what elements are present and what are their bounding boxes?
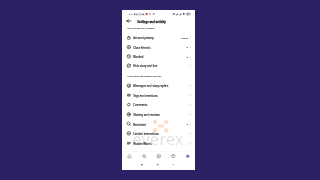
button[interactable]: Blocked [122, 52, 195, 61]
staticText: Sharing and remixes [133, 113, 160, 117]
button[interactable]: Tags and mentions [122, 90, 195, 100]
button[interactable]: Profile [180, 151, 195, 161]
staticText: Account privacy [133, 36, 154, 40]
staticText: Settings and activity [137, 19, 166, 23]
staticText: 2 [187, 46, 188, 49]
staticText: Who can see your content [127, 26, 154, 29]
staticText: Who can see your content [127, 26, 154, 29]
staticText: 9:41 ▮▦▥▤▣◫ [129, 12, 147, 16]
staticText: Blocked [133, 55, 144, 59]
staticText: Messages and story replies [133, 84, 168, 88]
staticText: Restricted [133, 122, 146, 126]
staticText: Hide story and live [133, 64, 157, 68]
staticText: Hide story and live [133, 64, 157, 68]
staticText: Restricted [133, 122, 146, 126]
button[interactable]: Back [170, 161, 176, 170]
button[interactable]: Search [137, 151, 152, 161]
button[interactable]: Messages and story replies [122, 81, 195, 90]
button[interactable]: Limited interactions [122, 129, 195, 138]
button[interactable]: Home [122, 151, 137, 161]
staticText: Tags and mentions [133, 94, 158, 98]
staticText: Messages and story replies [133, 84, 168, 88]
staticText: Comments [133, 103, 148, 107]
staticText: Hidden Words [133, 142, 152, 146]
button[interactable]: Comments [122, 100, 195, 109]
button[interactable]: Sharing and remixes [122, 110, 195, 119]
button[interactable]: Hidden Words [122, 138, 195, 148]
staticText: Comments [133, 103, 148, 107]
staticText: 4 [187, 55, 188, 58]
staticText: Sharing and remixes [133, 113, 160, 117]
button[interactable]: Account privacy [122, 33, 195, 42]
staticText: How others can interact with you [127, 74, 162, 77]
staticText: Settings and activity [137, 19, 166, 23]
staticText: Limited interactions [133, 132, 159, 136]
button[interactable]: Recents [139, 161, 145, 170]
staticText: 4 [187, 122, 188, 126]
staticText: Close Friends [133, 46, 151, 50]
button[interactable]: Home [154, 161, 160, 170]
staticText: Limited interactions [133, 132, 159, 136]
staticText: 4 [187, 55, 188, 58]
button[interactable]: Back [125, 17, 132, 24]
staticText: Account privacy [133, 36, 154, 40]
staticText: everex [132, 127, 184, 149]
staticText: Public [181, 36, 188, 40]
button[interactable]: Restricted [122, 119, 195, 129]
button[interactable]: Shop [166, 151, 180, 161]
staticText: How others can interact with you [127, 74, 162, 77]
staticText: Tags and mentions [133, 94, 158, 98]
staticText: 4 [187, 122, 188, 126]
staticText: Blocked [133, 55, 144, 59]
button[interactable]: Reels [151, 151, 166, 161]
button[interactable]: Close Friends [122, 42, 195, 52]
staticText: Hidden Words [133, 142, 152, 146]
staticText: 2 [187, 46, 188, 49]
button[interactable]: Hide story and live [122, 61, 195, 70]
staticText: Close Friends [133, 46, 151, 50]
staticText: Public [181, 36, 188, 40]
